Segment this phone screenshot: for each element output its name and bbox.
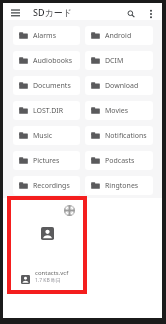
staticText: Recordings <box>33 181 70 191</box>
button[interactable]: Recordings <box>13 176 80 195</box>
button[interactable]: Music <box>13 126 80 145</box>
staticText: Audiobooks <box>33 56 73 66</box>
button[interactable]: LOST.DIR <box>13 101 80 120</box>
staticText: Pictures <box>33 156 60 166</box>
button[interactable]: Pictures <box>13 151 80 170</box>
button[interactable]: Ringtones <box>85 176 153 195</box>
button[interactable]: More options <box>143 6 159 22</box>
staticText: Ringtones <box>105 181 139 191</box>
button[interactable]: Android <box>85 26 153 45</box>
button[interactable]: Download <box>85 76 153 95</box>
staticText: Notifications <box>105 131 147 141</box>
staticText: Podcasts <box>105 156 135 166</box>
button[interactable]: Open navigation menu <box>7 4 23 20</box>
staticText: Movies <box>105 106 129 116</box>
staticText: Alarms <box>33 31 56 41</box>
button[interactable]: Documents <box>13 76 80 95</box>
staticText: SDカード <box>33 6 72 18</box>
button[interactable]: Move <box>64 205 75 216</box>
button[interactable]: Podcasts <box>85 151 153 170</box>
staticText: LOST.DIR <box>33 106 64 116</box>
button[interactable]: Alarms <box>13 26 80 45</box>
staticText: Documents <box>33 81 71 91</box>
staticText: DCIM <box>105 56 124 66</box>
button[interactable]: Notifications <box>85 126 153 145</box>
staticText: Android <box>105 31 132 41</box>
staticText: Music <box>33 131 53 141</box>
button[interactable]: DCIM <box>85 51 153 70</box>
staticText: 1.7 KB 昨日 <box>35 277 62 284</box>
button[interactable]: Movies <box>85 101 153 120</box>
staticText: contacts.vcf <box>35 269 69 277</box>
button[interactable]: Audiobooks <box>13 51 80 70</box>
button[interactable]: Search <box>123 6 139 22</box>
staticText: Download <box>105 81 139 91</box>
